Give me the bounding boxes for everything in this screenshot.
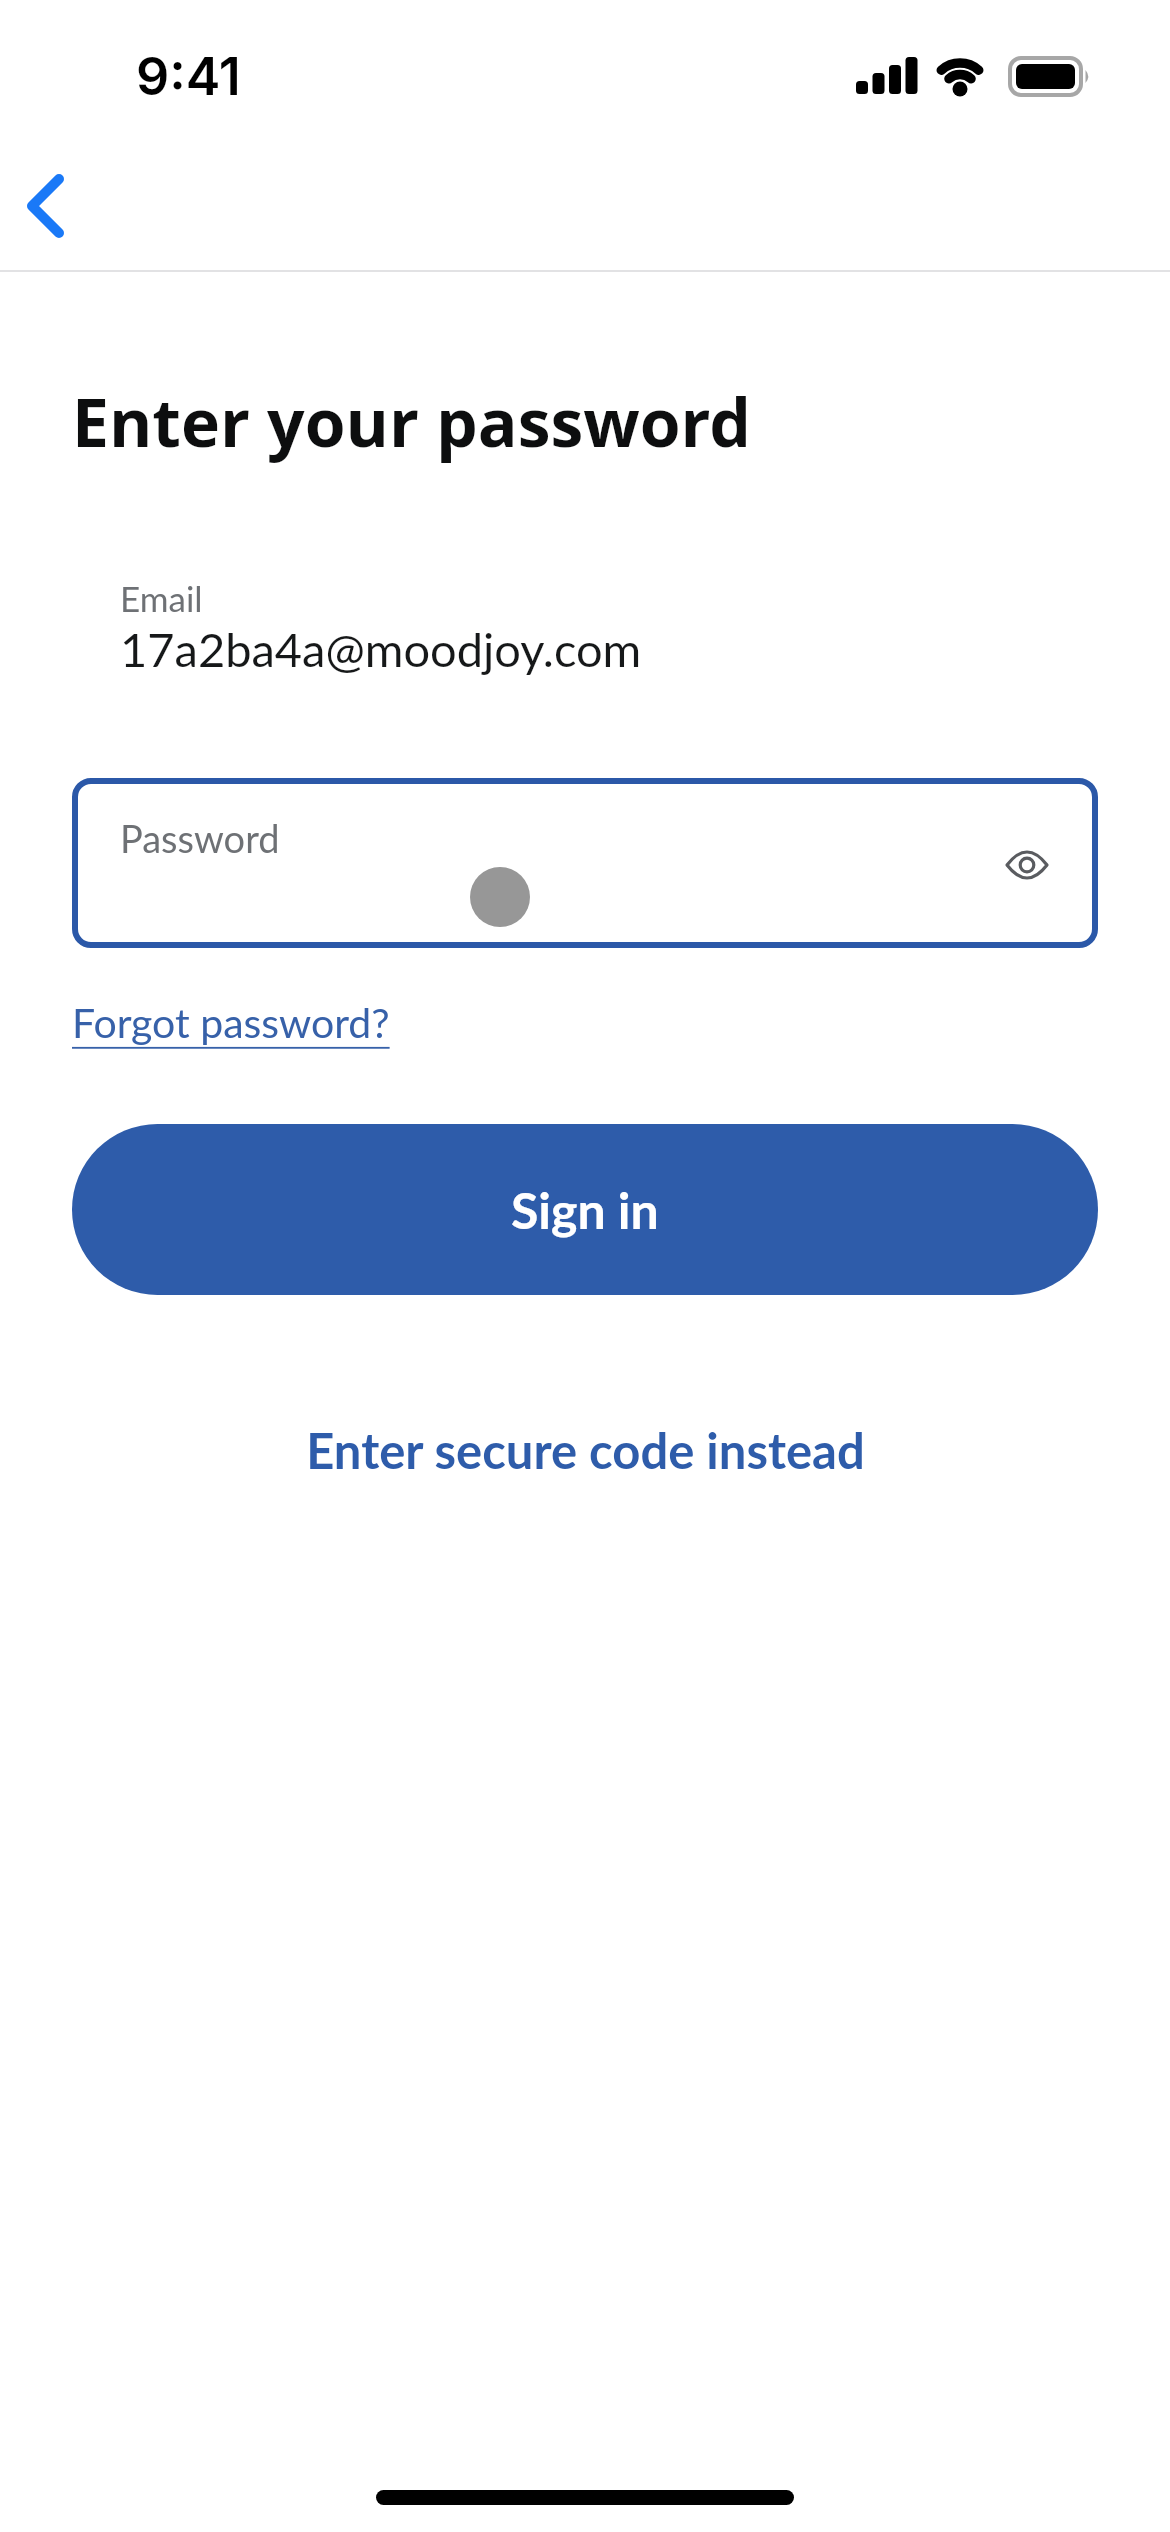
button[interactable]: Sign in (72, 1124, 1098, 1295)
staticText: 9:41 (136, 45, 241, 108)
staticText: Password (120, 815, 280, 861)
button[interactable] (10, 160, 100, 250)
staticText: Enter your password (72, 376, 752, 466)
button[interactable]: Forgot password? (72, 998, 390, 1047)
staticText: 17a2ba4a@moodjoy.com (120, 621, 642, 677)
button[interactable]: Enter secure code instead (306, 1421, 865, 1480)
button[interactable]: Password (72, 778, 1098, 948)
button[interactable] (997, 835, 1057, 895)
staticText: Email (120, 577, 203, 619)
staticText: Sign in (511, 1180, 659, 1240)
